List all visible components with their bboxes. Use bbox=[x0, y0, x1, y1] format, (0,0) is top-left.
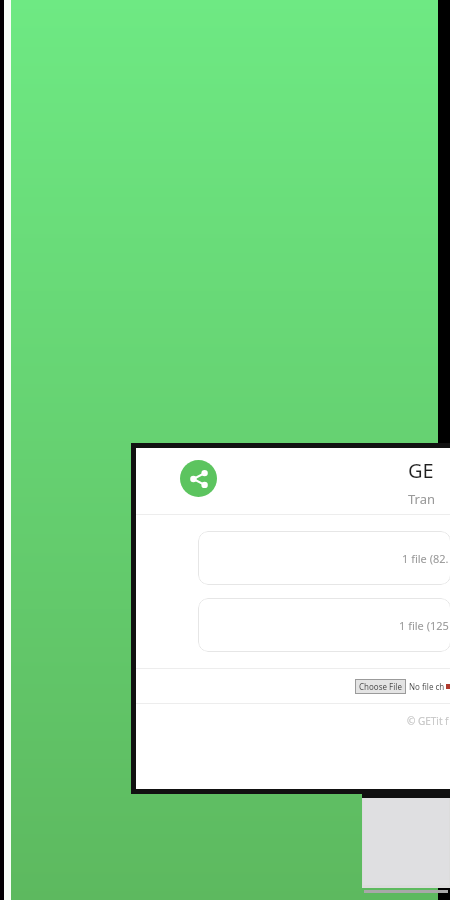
button[interactable]: Choose File bbox=[355, 679, 450, 694]
button[interactable]: 1 file (82. bbox=[198, 531, 450, 585]
staticText: 1 file (82. bbox=[402, 551, 449, 566]
staticText: 1 file (125 bbox=[399, 618, 449, 633]
staticText: Tran bbox=[408, 490, 436, 508]
staticText: No file ch bbox=[409, 681, 445, 692]
staticText: GE bbox=[408, 457, 434, 484]
button[interactable]: Share bbox=[180, 460, 217, 497]
staticText: © GETit f bbox=[407, 714, 449, 728]
button[interactable]: 1 file (125 bbox=[198, 598, 450, 652]
button[interactable] bbox=[362, 793, 450, 888]
staticText: Choose File bbox=[359, 681, 402, 692]
